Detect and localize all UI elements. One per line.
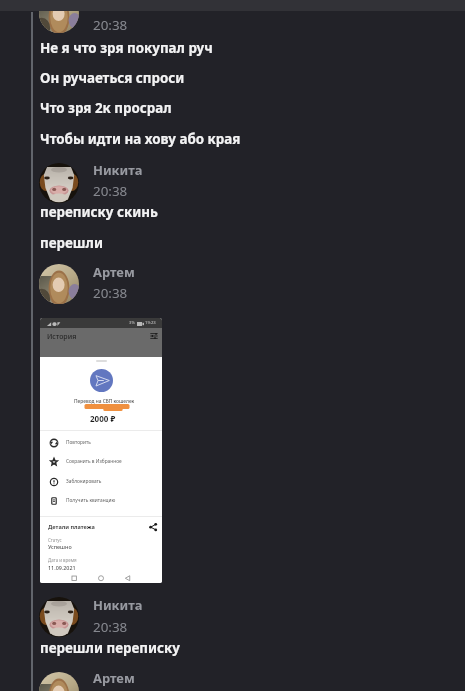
staticText: переписку скинь bbox=[40, 203, 158, 221]
staticText: 20:38 bbox=[93, 284, 128, 302]
staticText: Получить квитанцию bbox=[66, 497, 116, 504]
staticText: Никита bbox=[93, 161, 143, 179]
staticText: Повторить bbox=[66, 439, 91, 446]
staticText: перешли bbox=[40, 234, 103, 252]
button[interactable]: Повторить bbox=[40, 433, 162, 452]
staticText: Чтобы идти на хову або края bbox=[40, 130, 241, 148]
staticText: 20:38 bbox=[93, 182, 128, 200]
staticText: Заблокировать bbox=[66, 478, 102, 485]
staticText: Сохранить в Избранное bbox=[66, 458, 122, 465]
staticText: Перевод на СБП кошелек bbox=[74, 398, 135, 405]
staticText: Не я что зря покупал руч bbox=[40, 39, 213, 57]
button[interactable]: Filter bbox=[150, 333, 158, 339]
staticText: Дата и время bbox=[48, 557, 77, 563]
staticText: Никита bbox=[93, 596, 143, 614]
button[interactable]: 3% bbox=[40, 318, 162, 583]
button[interactable]: Получить квитанцию bbox=[40, 491, 162, 510]
button[interactable]: Share bbox=[149, 523, 157, 531]
button[interactable]: Заблокировать bbox=[40, 472, 162, 491]
staticText: История bbox=[47, 332, 77, 342]
staticText: Он ручаеться спроси bbox=[40, 69, 185, 87]
staticText: 20:38 bbox=[93, 16, 128, 34]
staticText: 2000 ₽ bbox=[90, 413, 116, 424]
staticText: перешли переписку bbox=[40, 639, 180, 657]
staticText: Детали платежа bbox=[48, 523, 95, 531]
staticText: Статус bbox=[48, 537, 62, 543]
staticText: 19:23 bbox=[145, 320, 156, 326]
staticText: 11.09.2021 bbox=[48, 564, 76, 571]
button[interactable]: Сохранить в Избранное bbox=[40, 452, 162, 471]
staticText: Что зря 2к просрал bbox=[40, 99, 172, 117]
staticText: Успешно bbox=[48, 543, 72, 550]
staticText: Артем bbox=[93, 263, 135, 281]
staticText: 3% bbox=[129, 320, 135, 326]
staticText: 20:38 bbox=[93, 618, 128, 636]
staticText: Артем bbox=[93, 669, 135, 687]
